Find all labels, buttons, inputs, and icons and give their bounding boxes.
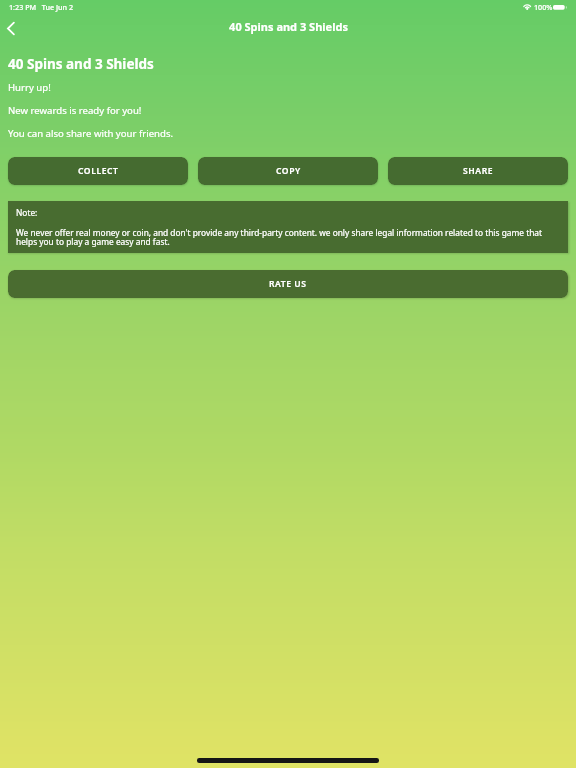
button[interactable]: Back	[0, 8, 24, 34]
button[interactable]: SHARE	[388, 157, 568, 185]
staticText: Note:	[16, 207, 38, 218]
staticText: Hurry up!	[8, 81, 51, 94]
staticText: 40 Spins and 3 Shields	[8, 55, 154, 73]
staticText: New rewards is ready for you!	[8, 104, 142, 117]
button[interactable]: RATE US	[8, 270, 568, 298]
staticText: RATE US	[269, 278, 307, 290]
staticText: 40 Spins and 3 Shields	[229, 19, 348, 34]
staticText: 100%	[534, 2, 553, 12]
staticText: We never offer real money or coin, and d…	[16, 227, 560, 248]
staticText: SHARE	[463, 165, 494, 177]
button[interactable]: COLLECT	[8, 157, 188, 185]
staticText: 1:23 PM Tue Jun 2	[9, 2, 74, 12]
staticText: You can also share with your friends.	[8, 127, 174, 140]
staticText: COLLECT	[78, 165, 119, 177]
button[interactable]: COPY	[198, 157, 378, 185]
staticText: COPY	[276, 165, 301, 177]
